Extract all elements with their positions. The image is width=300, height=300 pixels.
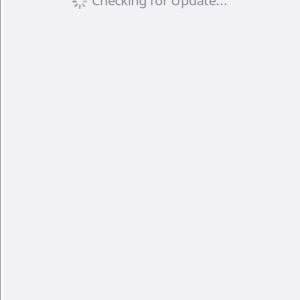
staticText: Checking for Update... bbox=[92, 0, 228, 9]
